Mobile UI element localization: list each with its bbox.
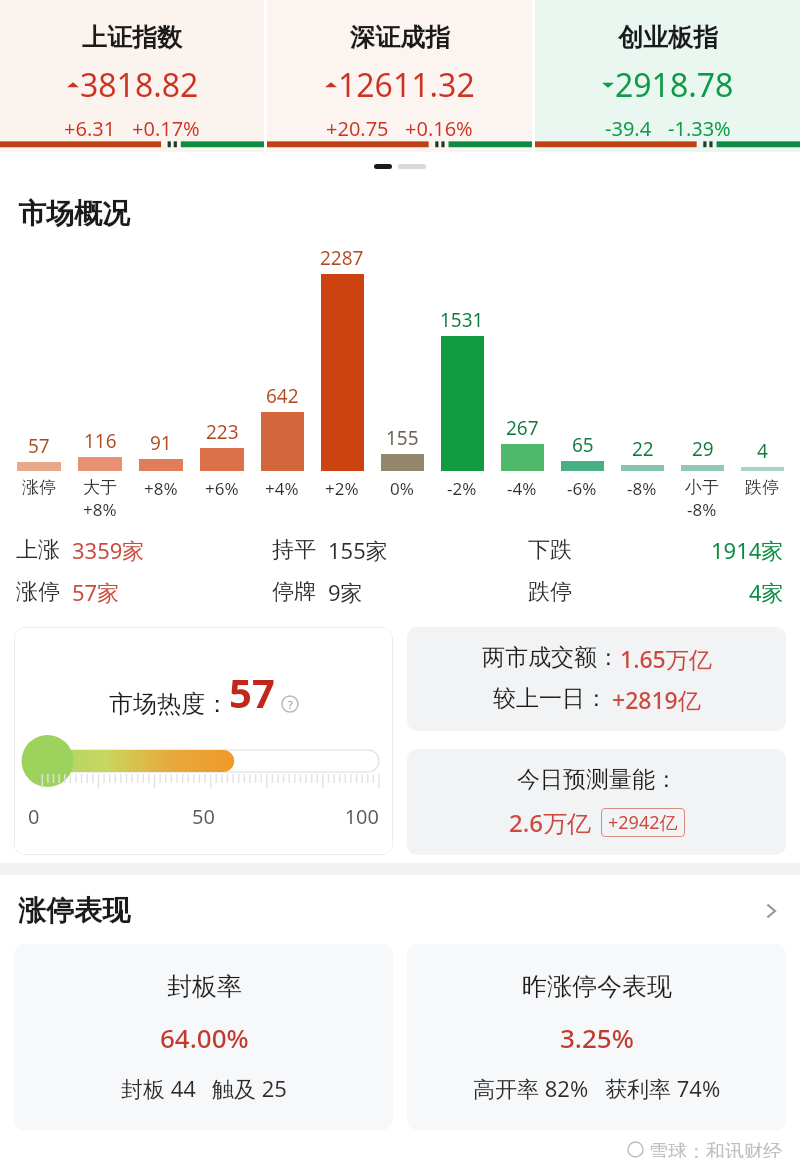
staticText: 1.65万亿 [620, 643, 712, 674]
staticText: 22 [632, 436, 654, 462]
button[interactable]: 创业板指 [535, 0, 800, 152]
staticText: +0.16% [405, 115, 473, 142]
button[interactable]: 昨涨停今表现 [407, 944, 786, 1130]
button[interactable]: 深证成指 [267, 0, 532, 152]
staticText: +8% [83, 498, 117, 521]
staticText: 3.25% [560, 1020, 634, 1055]
staticText: 155 [386, 425, 419, 451]
staticText: 跌停 [528, 578, 572, 606]
other: 更多 [758, 898, 784, 924]
staticText: 29 [692, 436, 714, 462]
button[interactable]: 今日预测量能： [407, 749, 786, 855]
staticText: -39.4 [605, 115, 652, 142]
staticText: 雪球：和讯财经 [649, 1140, 782, 1158]
staticText: 高开率 82% [473, 1073, 589, 1103]
staticText: 50 [145, 803, 262, 830]
button[interactable]: 上证指数 [0, 0, 264, 152]
staticText: -4% [507, 477, 537, 500]
staticText: +2819亿 [612, 684, 701, 715]
staticText: 4家 [749, 577, 784, 607]
staticText: 封板 44 [121, 1073, 196, 1103]
staticText: 9家 [328, 577, 363, 607]
staticText: 57 [28, 433, 50, 459]
staticText: 今日预测量能： [517, 765, 678, 794]
staticText: 涨停 [16, 578, 60, 606]
staticText: 涨停表现 [18, 893, 130, 928]
staticText: -1.33% [668, 115, 731, 142]
staticText: 停牌 [272, 578, 316, 606]
staticText: 12611.32 [338, 63, 475, 107]
staticText: 65 [572, 432, 594, 458]
staticText: 223 [206, 419, 239, 445]
staticText: 获利率 74% [605, 1073, 721, 1103]
staticText: 市场概况 [18, 196, 130, 231]
staticText: 跌停 [745, 477, 779, 498]
staticText: 57家 [72, 577, 120, 607]
staticText: 深证成指 [350, 22, 450, 53]
button[interactable]: 两市成交额： [407, 627, 786, 731]
staticText: +6% [205, 477, 239, 500]
staticText: 昨涨停今表现 [522, 971, 672, 1002]
staticText: 0% [390, 477, 414, 500]
staticText: 4 [757, 438, 768, 464]
staticText: 上证指数 [82, 22, 182, 53]
button[interactable]: 上涨 [16, 535, 272, 565]
button[interactable]: 市场热度： [14, 627, 393, 855]
staticText: 57 [229, 665, 275, 719]
staticText: 0 [28, 803, 145, 830]
staticText: 持平 [272, 536, 316, 564]
staticText: +2942亿 [608, 810, 678, 835]
staticText: +6.31 [64, 115, 116, 142]
staticText: 触及 25 [212, 1073, 287, 1103]
button[interactable]: 涨停 [16, 577, 272, 607]
button[interactable]: 停牌 [272, 577, 528, 607]
staticText: 91 [150, 430, 172, 456]
staticText: ? [288, 697, 293, 712]
staticText: +8% [144, 477, 178, 500]
staticText: 2287 [320, 245, 364, 271]
staticText: -8% [687, 498, 717, 521]
staticText: 642 [266, 383, 299, 409]
button[interactable]: 下跌 [528, 535, 784, 565]
button[interactable]: 封板率 [14, 944, 393, 1130]
staticText: 3359家 [72, 535, 145, 565]
staticText: 3818.82 [80, 63, 199, 107]
staticText: 155家 [328, 535, 388, 565]
staticText: 创业板指 [618, 22, 718, 53]
staticText: 1914家 [711, 535, 784, 565]
staticText: +4% [265, 477, 299, 500]
button[interactable]: 说明 [281, 695, 299, 713]
staticText: 2918.78 [615, 63, 734, 107]
staticText: 涨停 [22, 477, 56, 498]
staticText: -2% [447, 477, 477, 500]
staticText: 64.00% [160, 1020, 249, 1055]
staticText: 市场热度： [109, 689, 229, 719]
staticText: 两市成交额： [482, 643, 620, 672]
staticText: +2% [325, 477, 359, 500]
staticText: 116 [84, 428, 117, 454]
button[interactable]: 跌停 [528, 577, 784, 607]
staticText: +20.75 [326, 115, 389, 142]
staticText: 下跌 [528, 536, 572, 564]
staticText: 上涨 [16, 536, 60, 564]
staticText: 大于 [83, 477, 117, 498]
staticText: 100 [262, 803, 379, 830]
staticText: +0.17% [132, 115, 200, 142]
button[interactable]: 持平 [272, 535, 528, 565]
staticText: 封板率 [167, 971, 242, 1002]
button[interactable]: 涨停表现 [18, 893, 784, 928]
staticText: 小于 [685, 477, 719, 498]
staticText: 1531 [440, 307, 484, 333]
staticText: 267 [506, 415, 539, 441]
staticText: 2.6万亿 [509, 806, 591, 839]
staticText: -6% [567, 477, 597, 500]
staticText: -8% [627, 477, 657, 500]
staticText: 较上一日： [493, 684, 608, 713]
